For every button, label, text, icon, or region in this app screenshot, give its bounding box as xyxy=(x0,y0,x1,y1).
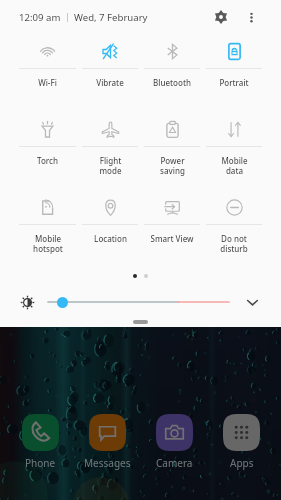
button[interactable]: Smart View xyxy=(141,190,203,268)
button[interactable]: Wi-Fi xyxy=(16,34,79,112)
button[interactable]: Bluetooth xyxy=(141,34,203,112)
button[interactable]: Flight mode xyxy=(79,112,141,190)
button[interactable]: Expand xyxy=(241,291,263,313)
staticText: Location xyxy=(94,233,127,244)
staticText: 12:09 am xyxy=(19,11,61,24)
button[interactable]: Settings xyxy=(208,4,234,30)
button[interactable]: Phone xyxy=(6,414,74,470)
button[interactable]: Vibrate xyxy=(79,34,141,112)
button[interactable]: Mobile hotspot xyxy=(16,190,79,268)
button[interactable]: Mobile data xyxy=(203,112,265,190)
button[interactable]: Portrait xyxy=(203,34,265,112)
button[interactable]: More options xyxy=(239,5,263,29)
staticText: Do not disturb xyxy=(220,233,248,254)
staticText: Bluetooth xyxy=(153,77,191,88)
staticText: Flight mode xyxy=(99,155,122,176)
staticText: Phone xyxy=(25,456,56,470)
staticText: Mobile data xyxy=(221,155,248,176)
button[interactable]: Apps xyxy=(208,414,275,470)
staticText: Apps xyxy=(230,456,254,470)
staticText: Mobile hotspot xyxy=(33,233,63,254)
staticText: Power saving xyxy=(160,155,185,176)
staticText: Torch xyxy=(37,155,58,166)
button[interactable]: Auto brightness xyxy=(16,291,38,313)
staticText: Wed, 7 February xyxy=(74,11,148,24)
button[interactable]: Camera xyxy=(141,414,208,470)
button[interactable]: Brightness level xyxy=(57,297,68,308)
staticText: Camera xyxy=(156,456,193,470)
staticText: Smart View xyxy=(150,233,194,244)
staticText: Wi-Fi xyxy=(38,77,57,88)
staticText: Vibrate xyxy=(96,77,124,88)
button[interactable]: Messages xyxy=(74,414,141,470)
button[interactable]: Torch xyxy=(16,112,79,190)
staticText: Portrait xyxy=(219,77,249,88)
button[interactable]: Power saving xyxy=(141,112,203,190)
button[interactable]: Location xyxy=(79,190,141,268)
button[interactable]: Do not disturb xyxy=(203,190,265,268)
staticText: Messages xyxy=(84,456,131,470)
